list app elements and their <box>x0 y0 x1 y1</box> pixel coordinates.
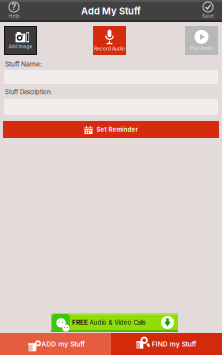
button[interactable]: Add Image <box>4 26 37 55</box>
staticText: Record Audio <box>94 46 125 52</box>
staticText: Audio & Video Calls <box>89 319 145 326</box>
staticText: ? <box>11 2 16 12</box>
staticText: FIND my Stuff <box>152 340 197 348</box>
staticText: Set Reminder <box>96 126 137 133</box>
staticText: Stuff Name: <box>5 60 42 68</box>
staticText: Add Image <box>8 44 32 49</box>
staticText: Help <box>8 13 19 19</box>
staticText: Save <box>202 13 214 19</box>
button[interactable]: Save <box>194 0 222 22</box>
button[interactable]: FIND my Stuff <box>111 333 222 355</box>
button[interactable]: Help <box>0 0 28 22</box>
staticText: Play Audio <box>189 45 213 51</box>
staticText: Add My Stuff <box>81 5 141 17</box>
button[interactable]: Play Audio <box>185 26 218 55</box>
button[interactable]: FREE <box>51 313 178 332</box>
button[interactable]: ADD my Stuff <box>0 333 111 355</box>
staticText: FREE <box>72 319 88 326</box>
button[interactable]: Set Reminder <box>3 121 219 138</box>
button[interactable]: Record Audio <box>93 26 126 55</box>
staticText: Stuff Description: <box>5 88 52 96</box>
staticText: ADD my Stuff <box>41 340 85 348</box>
